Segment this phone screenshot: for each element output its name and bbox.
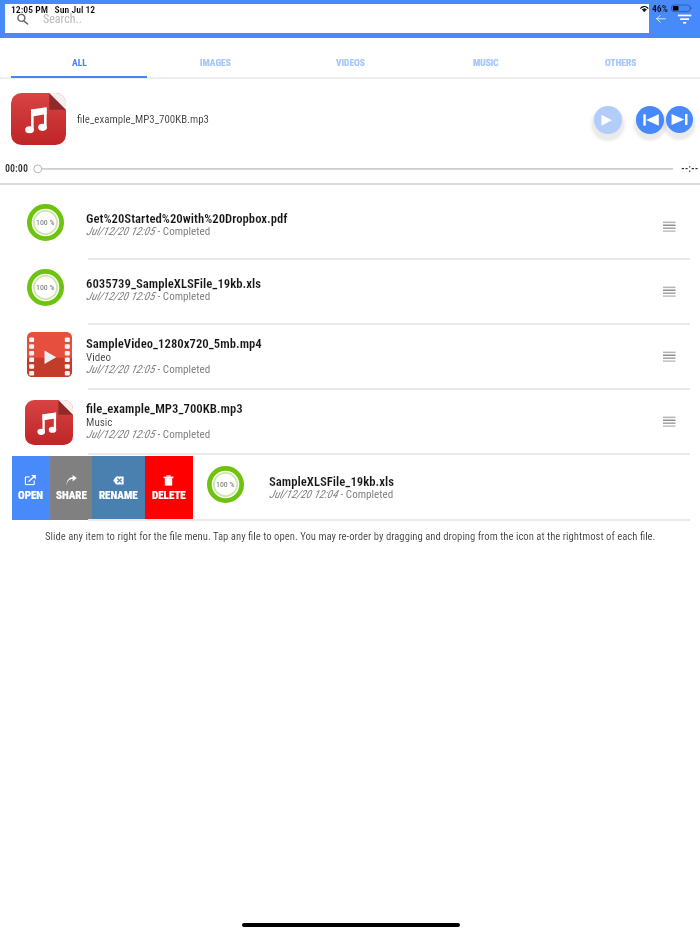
staticText: Get%20Started%20with%20Dropbox.pdf <box>86 211 288 226</box>
button[interactable]: OPEN <box>12 456 50 520</box>
staticText: Jul/12/20 12:04 <box>269 488 338 501</box>
button[interactable]: Reorder <box>656 214 684 240</box>
button[interactable]: VIDEOS <box>282 38 418 77</box>
button[interactable] <box>0 389 700 454</box>
staticText: RENAME <box>99 489 138 502</box>
button[interactable]: ALL <box>11 38 147 77</box>
staticText: file_example_MP3_700KB.mp3 <box>77 113 209 126</box>
staticText: SHARE <box>56 489 87 502</box>
staticText: MUSIC <box>473 57 499 68</box>
button[interactable]: Previous <box>636 106 664 134</box>
button[interactable] <box>0 259 700 324</box>
staticText: VIDEOS <box>336 57 365 68</box>
button[interactable] <box>0 324 700 389</box>
button[interactable]: Reorder <box>656 279 684 305</box>
staticText: Jul/12/20 12:05 <box>86 290 155 303</box>
staticText: - Completed <box>155 290 211 303</box>
staticText: --:-- <box>681 163 699 175</box>
button[interactable]: SHARE <box>50 456 92 520</box>
staticText: 100 % <box>216 480 235 489</box>
staticText: file_example_MP3_700KB.mp3 <box>86 401 243 416</box>
staticText: 12:05 PM Sun Jul 12 <box>11 4 96 15</box>
button[interactable]: Reorder <box>656 409 684 435</box>
staticText: Jul/12/20 12:05 <box>86 428 155 441</box>
button[interactable]: Reorder <box>656 344 684 370</box>
staticText: - Completed <box>155 428 211 441</box>
button[interactable]: DELETE <box>145 456 193 520</box>
staticText: Slide any item to right for the file men… <box>45 530 656 543</box>
button[interactable]: Next <box>666 106 693 133</box>
button[interactable]: OTHERS <box>553 38 689 77</box>
staticText: 00:00 <box>5 163 28 175</box>
button[interactable]: Play <box>594 106 622 134</box>
staticText: 46% <box>652 3 668 14</box>
staticText: 100 % <box>36 218 55 227</box>
button[interactable]: RENAME <box>92 456 145 520</box>
staticText: Search.. <box>43 12 82 26</box>
staticText: - Completed <box>338 488 394 501</box>
staticText: Music <box>86 416 113 429</box>
button[interactable]: Back <box>650 8 672 30</box>
staticText: - Completed <box>155 225 211 238</box>
staticText: OPEN <box>18 489 44 502</box>
staticText: SampleVideo_1280x720_5mb.mp4 <box>86 336 262 351</box>
button[interactable]: IMAGES <box>147 38 283 77</box>
staticText: Video <box>86 351 112 364</box>
staticText: Jul/12/20 12:05 <box>86 363 155 376</box>
staticText: SampleXLSFile_19kb.xls <box>269 474 395 489</box>
staticText: Jul/12/20 12:05 <box>86 225 155 238</box>
staticText: 100 % <box>36 283 55 292</box>
staticText: DELETE <box>152 489 186 502</box>
staticText: ALL <box>72 57 87 68</box>
staticText: - Completed <box>155 363 211 376</box>
staticText: OTHERS <box>605 57 637 68</box>
button[interactable]: MUSIC <box>418 38 554 77</box>
staticText: 6035739_SampleXLSFile_19kb.xls <box>86 276 262 291</box>
staticText: IMAGES <box>200 57 231 68</box>
button[interactable]: Filter <box>673 8 695 30</box>
button[interactable] <box>5 4 649 33</box>
button[interactable] <box>0 194 700 259</box>
